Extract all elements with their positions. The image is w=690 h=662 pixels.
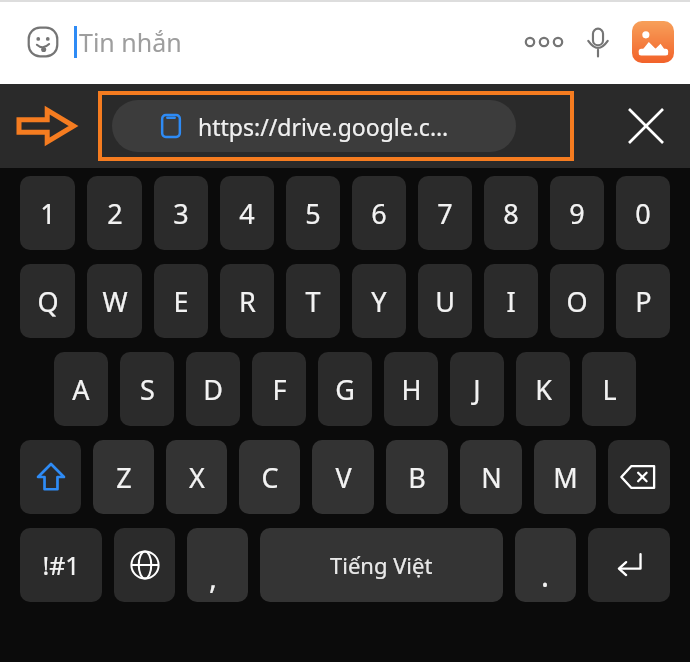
- button[interactable]: Gallery: [628, 17, 678, 67]
- button[interactable]: R: [220, 264, 274, 338]
- staticText: .: [541, 555, 550, 596]
- button[interactable]: Shift: [20, 440, 81, 514]
- button[interactable]: Y: [352, 264, 406, 338]
- button[interactable]: Voice input: [574, 18, 622, 66]
- staticText: 8: [503, 195, 519, 232]
- staticText: 9: [569, 195, 585, 232]
- staticText: Z: [116, 459, 132, 496]
- staticText: G: [335, 371, 355, 408]
- button[interactable]: I: [484, 264, 538, 338]
- staticText: W: [102, 283, 128, 320]
- button[interactable]: M: [534, 440, 596, 514]
- staticText: 6: [371, 195, 387, 232]
- button[interactable]: P: [616, 264, 670, 338]
- button[interactable]: 9: [550, 176, 604, 250]
- staticText: R: [239, 283, 256, 320]
- button[interactable]: .: [515, 528, 576, 602]
- staticText: E: [173, 283, 189, 320]
- button[interactable]: L: [582, 352, 636, 426]
- staticText: N: [481, 459, 502, 496]
- button[interactable]: 6: [352, 176, 406, 250]
- button[interactable]: V: [312, 440, 374, 514]
- staticText: 5: [305, 195, 321, 232]
- staticText: T: [305, 283, 321, 320]
- staticText: V: [335, 459, 352, 496]
- button[interactable]: https://drive.google.c…: [112, 100, 516, 152]
- staticText: C: [261, 459, 279, 496]
- staticText: M: [553, 459, 578, 496]
- button[interactable]: F: [252, 352, 306, 426]
- button[interactable]: A: [54, 352, 108, 426]
- staticText: F: [272, 371, 287, 408]
- staticText: https://drive.google.c…: [198, 111, 449, 142]
- staticText: L: [602, 371, 617, 408]
- button[interactable]: H: [384, 352, 438, 426]
- staticText: P: [635, 283, 652, 320]
- staticText: 4: [239, 195, 255, 232]
- staticText: Tin nhắn: [79, 25, 182, 59]
- staticText: I: [506, 283, 516, 320]
- button[interactable]: Change keyboard language: [114, 528, 175, 602]
- staticText: X: [189, 459, 205, 496]
- button[interactable]: B: [386, 440, 448, 514]
- button[interactable]: 5: [286, 176, 340, 250]
- button[interactable]: U: [418, 264, 472, 338]
- button[interactable]: 7: [418, 176, 472, 250]
- button[interactable]: N: [460, 440, 522, 514]
- staticText: ,: [209, 557, 218, 598]
- staticText: S: [140, 371, 155, 408]
- staticText: Tiếng Việt: [330, 550, 433, 580]
- staticText: Q: [37, 283, 59, 320]
- staticText: 3: [173, 195, 189, 232]
- button[interactable]: K: [516, 352, 570, 426]
- button[interactable]: More options: [520, 18, 568, 66]
- staticText: K: [535, 371, 552, 408]
- button[interactable]: E: [154, 264, 208, 338]
- button[interactable]: O: [550, 264, 604, 338]
- button[interactable]: 2: [87, 176, 142, 250]
- button[interactable]: Enter: [588, 528, 670, 602]
- button[interactable]: S: [120, 352, 174, 426]
- staticText: 1: [40, 195, 56, 232]
- staticText: D: [203, 371, 223, 408]
- button[interactable]: Close: [620, 100, 672, 152]
- button[interactable]: Q: [20, 264, 75, 338]
- staticText: 2: [107, 195, 123, 232]
- button[interactable]: D: [186, 352, 240, 426]
- button[interactable]: X: [166, 440, 227, 514]
- button[interactable]: 8: [484, 176, 538, 250]
- staticText: J: [473, 371, 481, 408]
- button[interactable]: ,: [187, 528, 248, 602]
- button[interactable]: Backspace: [608, 440, 670, 514]
- button[interactable]: Emoji: [20, 19, 66, 65]
- button[interactable]: 1: [20, 176, 75, 250]
- staticText: U: [435, 283, 455, 320]
- staticText: Y: [371, 283, 387, 320]
- staticText: 7: [437, 195, 453, 232]
- button[interactable]: Z: [93, 440, 154, 514]
- button[interactable]: 3: [154, 176, 208, 250]
- staticText: H: [401, 371, 422, 408]
- button[interactable]: C: [239, 440, 300, 514]
- button[interactable]: !#1: [20, 528, 102, 602]
- staticText: B: [408, 459, 426, 496]
- staticText: O: [566, 283, 588, 320]
- staticText: !#1: [42, 548, 80, 582]
- staticText: 0: [635, 195, 651, 232]
- button[interactable]: 0: [616, 176, 670, 250]
- button[interactable]: G: [318, 352, 372, 426]
- button[interactable]: T: [286, 264, 340, 338]
- button[interactable]: W: [87, 264, 142, 338]
- button[interactable]: Tiếng Việt: [260, 528, 503, 602]
- button[interactable]: J: [450, 352, 504, 426]
- button[interactable]: 4: [220, 176, 274, 250]
- staticText: A: [72, 371, 90, 408]
